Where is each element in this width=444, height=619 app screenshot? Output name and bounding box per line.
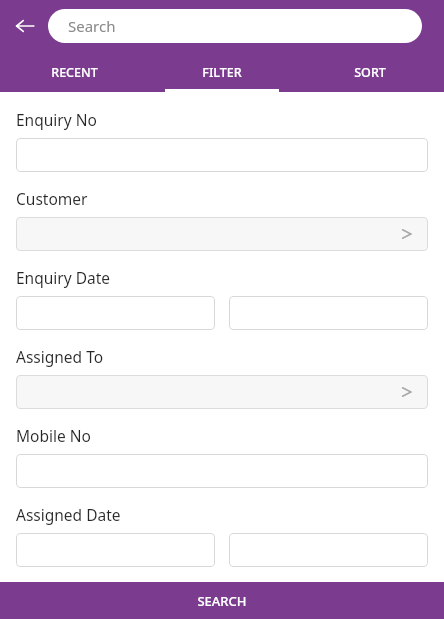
button[interactable]: FILTER [148, 52, 296, 92]
staticText: Enquiry Date [16, 267, 110, 288]
button[interactable]: Select customer [16, 217, 428, 251]
button[interactable]: SEARCH [0, 582, 444, 619]
button[interactable]: Select assignee [16, 375, 428, 409]
staticText: Mobile No [16, 425, 91, 446]
staticText: RECENT [51, 64, 98, 81]
button[interactable]: RECENT [0, 52, 148, 92]
button[interactable]: Back [6, 7, 44, 45]
staticText: Search [68, 16, 116, 36]
button[interactable] [16, 296, 215, 330]
button[interactable]: Search [48, 9, 422, 43]
staticText: SORT [354, 64, 386, 81]
staticText: FILTER [202, 64, 242, 81]
staticText: SEARCH [197, 592, 247, 610]
button[interactable]: SORT [296, 52, 444, 92]
button[interactable] [16, 454, 428, 488]
staticText: Customer [16, 188, 88, 209]
button[interactable] [16, 533, 215, 567]
staticText: Assigned To [16, 346, 104, 367]
button[interactable] [16, 138, 428, 172]
staticText: Assigned Date [16, 504, 121, 525]
button[interactable] [229, 533, 428, 567]
button[interactable] [229, 296, 428, 330]
staticText: Enquiry No [16, 109, 97, 130]
